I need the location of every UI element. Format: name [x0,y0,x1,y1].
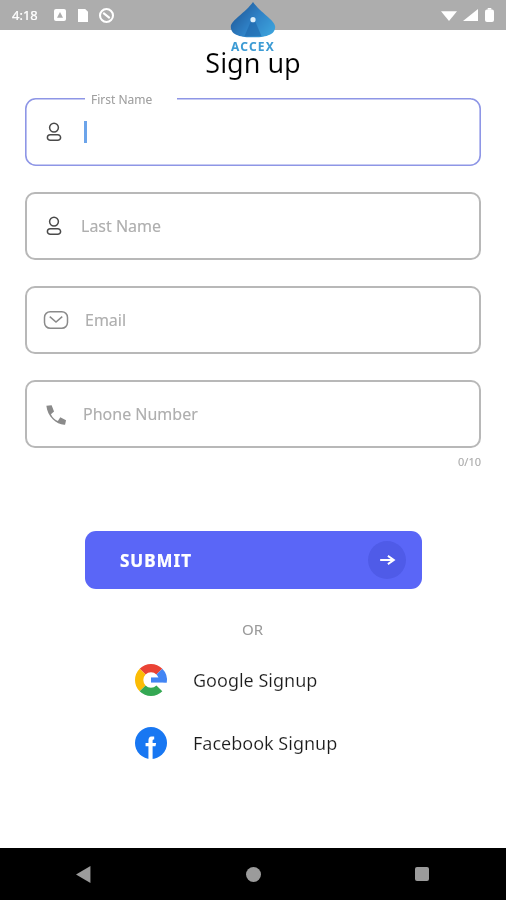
button[interactable]: Recent apps [398,850,446,898]
button[interactable]: Facebook Signup [133,725,373,761]
staticText: OR [242,619,264,639]
staticText: First Name [91,91,153,107]
staticText: 0/10 [458,454,481,469]
staticText: Facebook Signup [193,731,338,756]
button[interactable]: First Name [25,98,481,166]
button[interactable]: Last Name [43,192,481,260]
staticText: Google Signup [193,668,318,693]
staticText: SUBMIT [120,549,192,572]
button[interactable]: Google Signup [133,662,373,698]
button[interactable]: Back [60,850,108,898]
button[interactable]: Phone Number [43,380,481,448]
staticText: Last Name [81,215,162,237]
button[interactable]: SUBMIT [85,531,422,589]
staticText: Email [85,309,127,331]
button[interactable]: Home [229,850,277,898]
button[interactable]: Email [43,286,481,354]
staticText: 4:18 [12,6,38,24]
staticText: Phone Number [83,403,198,425]
staticText: Sign up [205,44,301,81]
staticText: ACCEX [231,38,275,54]
